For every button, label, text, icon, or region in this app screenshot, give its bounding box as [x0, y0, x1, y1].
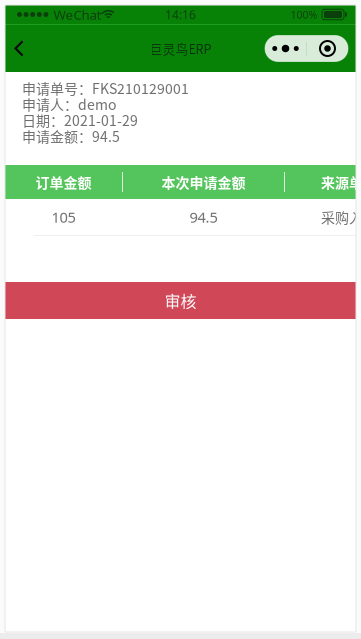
- staticText: 申请人：demo: [22, 94, 116, 114]
- staticText: 100%: [290, 7, 317, 22]
- staticText: 申请单号：FKS210129001: [22, 78, 189, 98]
- staticText: 巨灵鸟ERP: [149, 39, 211, 58]
- staticText: 审核: [164, 289, 196, 312]
- staticText: 14:16: [165, 6, 196, 22]
- button[interactable]: 审核: [5, 282, 356, 319]
- button[interactable]: Back: [14, 27, 44, 69]
- staticText: 采购入库: [321, 207, 361, 227]
- staticText: 申请金额：94.5: [22, 126, 120, 146]
- staticText: 来源单号: [321, 172, 361, 192]
- staticText: 日期：2021-01-29: [22, 110, 138, 130]
- staticText: 本次申请金额: [161, 172, 245, 192]
- button[interactable]: Close mini program: [307, 35, 348, 61]
- staticText: 订单金额: [35, 172, 91, 192]
- staticText: 94.5: [189, 207, 217, 227]
- staticText: 105: [51, 207, 75, 227]
- button[interactable]: More: [265, 35, 306, 61]
- staticText: WeChat: [53, 6, 101, 23]
